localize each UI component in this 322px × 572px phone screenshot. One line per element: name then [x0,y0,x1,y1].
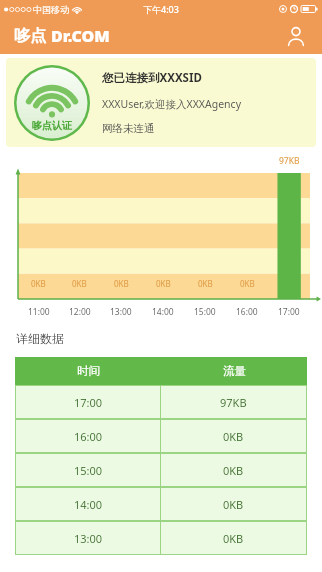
staticText: 0KB [223,497,244,512]
staticText: 0KB [31,278,46,289]
staticText: 0KB [72,278,87,289]
staticText: 14:00 [152,306,174,318]
staticText: XXXUser,欢迎接入XXXAgency [102,97,241,111]
staticText: 17:00 [74,395,103,410]
button[interactable]: 14:00 [15,487,307,521]
staticText: 下午4:03 [143,3,179,15]
staticText: 15:00 [74,463,103,478]
staticText: 13:00 [110,306,132,318]
button[interactable]: 15:00 [15,453,307,487]
button[interactable]: 16:00 [15,419,307,453]
staticText: 中国移动 [33,4,69,15]
staticText: 12:00 [69,306,91,318]
button[interactable]: Account [282,22,310,50]
staticText: 0KB [114,278,129,289]
staticText: 16:00 [74,429,103,444]
staticText: 14:00 [74,497,103,512]
staticText: 详细数据 [16,331,64,346]
staticText: 17:00 [278,306,300,318]
staticText: 15:00 [194,306,216,318]
staticText: 0KB [223,429,244,444]
button[interactable]: 13:00 [15,521,307,555]
staticText: 0KB [223,531,244,546]
staticText: 16:00 [236,306,258,318]
staticText: Dr.COM [51,25,110,47]
staticText: 流量 [223,364,246,378]
button[interactable]: 哆点认证 [6,58,316,147]
staticText: 时间 [77,364,100,378]
staticText: 97KB [279,155,300,167]
staticText: 0KB [240,278,255,289]
staticText: 13:00 [74,531,103,546]
staticText: 0KB [223,463,244,478]
staticText: 0KB [198,278,213,289]
staticText: 网络未连通 [102,122,155,135]
staticText: 您已连接到XXXSID [102,70,202,86]
staticText: 哆点认证 [32,119,72,132]
staticText: 11:00 [28,306,50,318]
staticText: 97KB [220,395,247,410]
button[interactable]: 17:00 [15,385,307,419]
staticText: 0KB [156,278,171,289]
staticText: 哆点 [14,26,46,46]
